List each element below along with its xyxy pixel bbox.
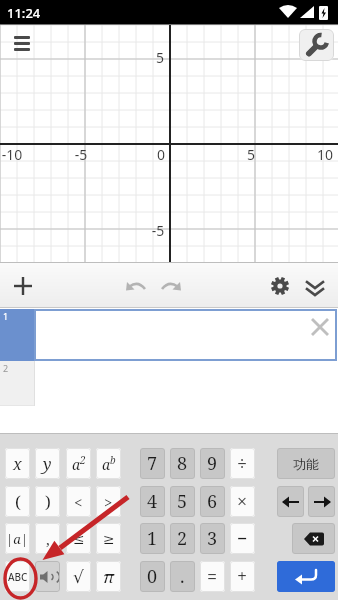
- staticText: 9: [207, 451, 218, 476]
- button[interactable]: −: [230, 523, 255, 554]
- staticText: =: [207, 564, 218, 589]
- button[interactable]: 2: [0, 361, 338, 406]
- button[interactable]: ,: [35, 523, 60, 554]
- staticText: 11:24: [7, 4, 41, 22]
- staticText: 1: [147, 526, 158, 551]
- button[interactable]: ≥: [96, 523, 121, 554]
- staticText: √: [73, 567, 84, 587]
- staticText: ): [45, 490, 51, 513]
- staticText: y: [43, 453, 52, 475]
- button[interactable]: x: [5, 448, 30, 479]
- button[interactable]: ÷: [230, 448, 255, 479]
- button[interactable]: 2: [170, 523, 195, 554]
- button[interactable]: .: [170, 561, 195, 592]
- button[interactable]: [308, 486, 335, 517]
- button[interactable]: >: [96, 486, 121, 517]
- button[interactable]: ): [35, 486, 60, 517]
- staticText: π: [103, 565, 114, 588]
- button[interactable]: π: [96, 561, 121, 592]
- button[interactable]: ab: [96, 448, 121, 479]
- staticText: <: [74, 492, 83, 512]
- staticText: -5: [69, 145, 93, 169]
- staticText: a2: [72, 453, 86, 474]
- button[interactable]: =: [200, 561, 225, 592]
- button[interactable]: |a|: [5, 523, 30, 554]
- staticText: 0: [149, 145, 173, 169]
- staticText: ABC: [8, 570, 28, 584]
- staticText: 3: [207, 526, 218, 551]
- button[interactable]: 8: [170, 448, 195, 479]
- staticText: ,: [46, 529, 50, 549]
- staticText: 5: [177, 489, 188, 514]
- button[interactable]: [277, 486, 304, 517]
- button[interactable]: <: [66, 486, 91, 517]
- button[interactable]: +: [230, 561, 255, 592]
- button[interactable]: [263, 269, 297, 303]
- button[interactable]: [6, 269, 40, 303]
- button[interactable]: [299, 29, 334, 61]
- button[interactable]: 9: [200, 448, 225, 479]
- staticText: 1: [3, 310, 9, 322]
- button[interactable]: [277, 561, 335, 592]
- button[interactable]: [292, 523, 335, 554]
- button[interactable]: (: [5, 486, 30, 517]
- staticText: 功能: [293, 456, 319, 472]
- staticText: -10: [0, 145, 24, 169]
- button[interactable]: [298, 269, 332, 303]
- staticText: 0: [147, 564, 158, 589]
- button[interactable]: y: [35, 448, 60, 479]
- button[interactable]: ≤: [66, 523, 91, 554]
- staticText: 5: [148, 48, 172, 72]
- staticText: |a|: [6, 530, 29, 548]
- button[interactable]: [306, 313, 334, 341]
- staticText: ≤: [73, 531, 85, 547]
- staticText: 7: [147, 451, 158, 476]
- staticText: ≥: [103, 531, 115, 547]
- button[interactable]: 7: [140, 448, 165, 479]
- staticText: ×: [237, 489, 248, 514]
- staticText: 6: [207, 489, 218, 514]
- staticText: 5: [239, 145, 263, 169]
- staticText: ÷: [237, 451, 248, 476]
- button[interactable]: ×: [230, 486, 255, 517]
- staticText: (: [15, 490, 21, 513]
- staticText: 2: [3, 362, 9, 374]
- staticText: 10: [313, 145, 337, 169]
- button[interactable]: [35, 561, 60, 592]
- button[interactable]: √: [66, 561, 91, 592]
- staticText: −: [237, 526, 248, 551]
- staticText: 8: [177, 451, 188, 476]
- staticText: .: [180, 564, 185, 589]
- staticText: ab: [102, 453, 116, 474]
- button[interactable]: ABC: [5, 561, 30, 592]
- staticText: +: [237, 564, 248, 589]
- button[interactable]: 功能: [277, 448, 335, 479]
- button[interactable]: 6: [200, 486, 225, 517]
- button[interactable]: [153, 269, 187, 303]
- button[interactable]: a2: [66, 448, 91, 479]
- button[interactable]: 1: [140, 523, 165, 554]
- staticText: -5: [146, 221, 170, 245]
- button[interactable]: 4: [140, 486, 165, 517]
- button[interactable]: 1: [0, 309, 338, 361]
- button[interactable]: 0: [140, 561, 165, 592]
- button[interactable]: 5: [170, 486, 195, 517]
- staticText: 4: [147, 489, 158, 514]
- button[interactable]: [6, 29, 38, 61]
- staticText: >: [104, 492, 113, 512]
- button[interactable]: [120, 269, 154, 303]
- staticText: x: [13, 453, 22, 475]
- staticText: 2: [177, 526, 188, 551]
- button[interactable]: 3: [200, 523, 225, 554]
